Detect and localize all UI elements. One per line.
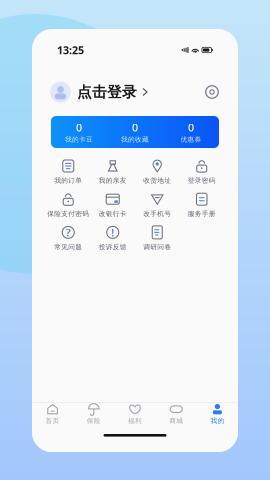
staticText: 0 <box>132 120 138 134</box>
button[interactable]: 首页 <box>32 403 73 425</box>
staticText: 我的 <box>210 417 224 425</box>
staticText: 0 <box>188 120 194 134</box>
button[interactable]: ? <box>46 225 90 251</box>
staticText: 收货地址 <box>143 176 171 185</box>
staticText: 服务手册 <box>188 210 216 218</box>
button[interactable]: 保险支付密码 <box>46 192 90 218</box>
staticText: 常见问题 <box>54 243 82 251</box>
staticText: 登录密码 <box>188 176 216 185</box>
staticText: 我的订单 <box>54 176 82 185</box>
staticText: ! <box>111 225 114 239</box>
staticText: 13:25 <box>57 43 84 57</box>
button[interactable]: 调研问卷 <box>135 225 179 251</box>
staticText: 保险 <box>87 417 101 425</box>
button[interactable]: Settings <box>204 84 220 100</box>
button[interactable]: 我的 <box>197 403 238 425</box>
button[interactable]: 福利 <box>114 403 156 425</box>
button[interactable]: 点击登录 <box>50 81 147 102</box>
staticText: 改银行卡 <box>99 210 127 218</box>
staticText: 0 <box>76 120 82 134</box>
button[interactable]: 保险 <box>73 403 114 425</box>
button[interactable]: 服务手册 <box>179 192 224 218</box>
staticText: 商城 <box>169 417 183 425</box>
staticText: 投诉反馈 <box>99 243 127 251</box>
button[interactable]: 我的亲友 <box>90 159 135 185</box>
button[interactable]: 改银行卡 <box>90 192 135 218</box>
staticText: 我的卡豆 <box>65 135 93 144</box>
button[interactable]: 改手机号 <box>135 192 179 218</box>
button[interactable]: 0 <box>163 116 219 148</box>
staticText: 调研问卷 <box>143 243 171 251</box>
staticText: 我的亲友 <box>99 176 127 185</box>
button[interactable]: 0 <box>51 116 107 148</box>
staticText: 点击登录 <box>77 83 137 101</box>
button[interactable]: ! <box>90 225 135 251</box>
staticText: 优惠券 <box>180 135 201 144</box>
staticText: 首页 <box>46 417 60 425</box>
staticText: ? <box>66 225 71 239</box>
button[interactable]: 我的订单 <box>46 159 90 185</box>
staticText: 福利 <box>128 417 142 425</box>
staticText: 改手机号 <box>143 210 171 218</box>
staticText: 保险支付密码 <box>47 210 89 218</box>
button[interactable]: 登录密码 <box>179 159 224 185</box>
button[interactable]: 0 <box>107 116 163 148</box>
staticText: 我的收藏 <box>121 135 149 144</box>
button[interactable]: 收货地址 <box>135 159 179 185</box>
button[interactable]: 商城 <box>156 403 197 425</box>
